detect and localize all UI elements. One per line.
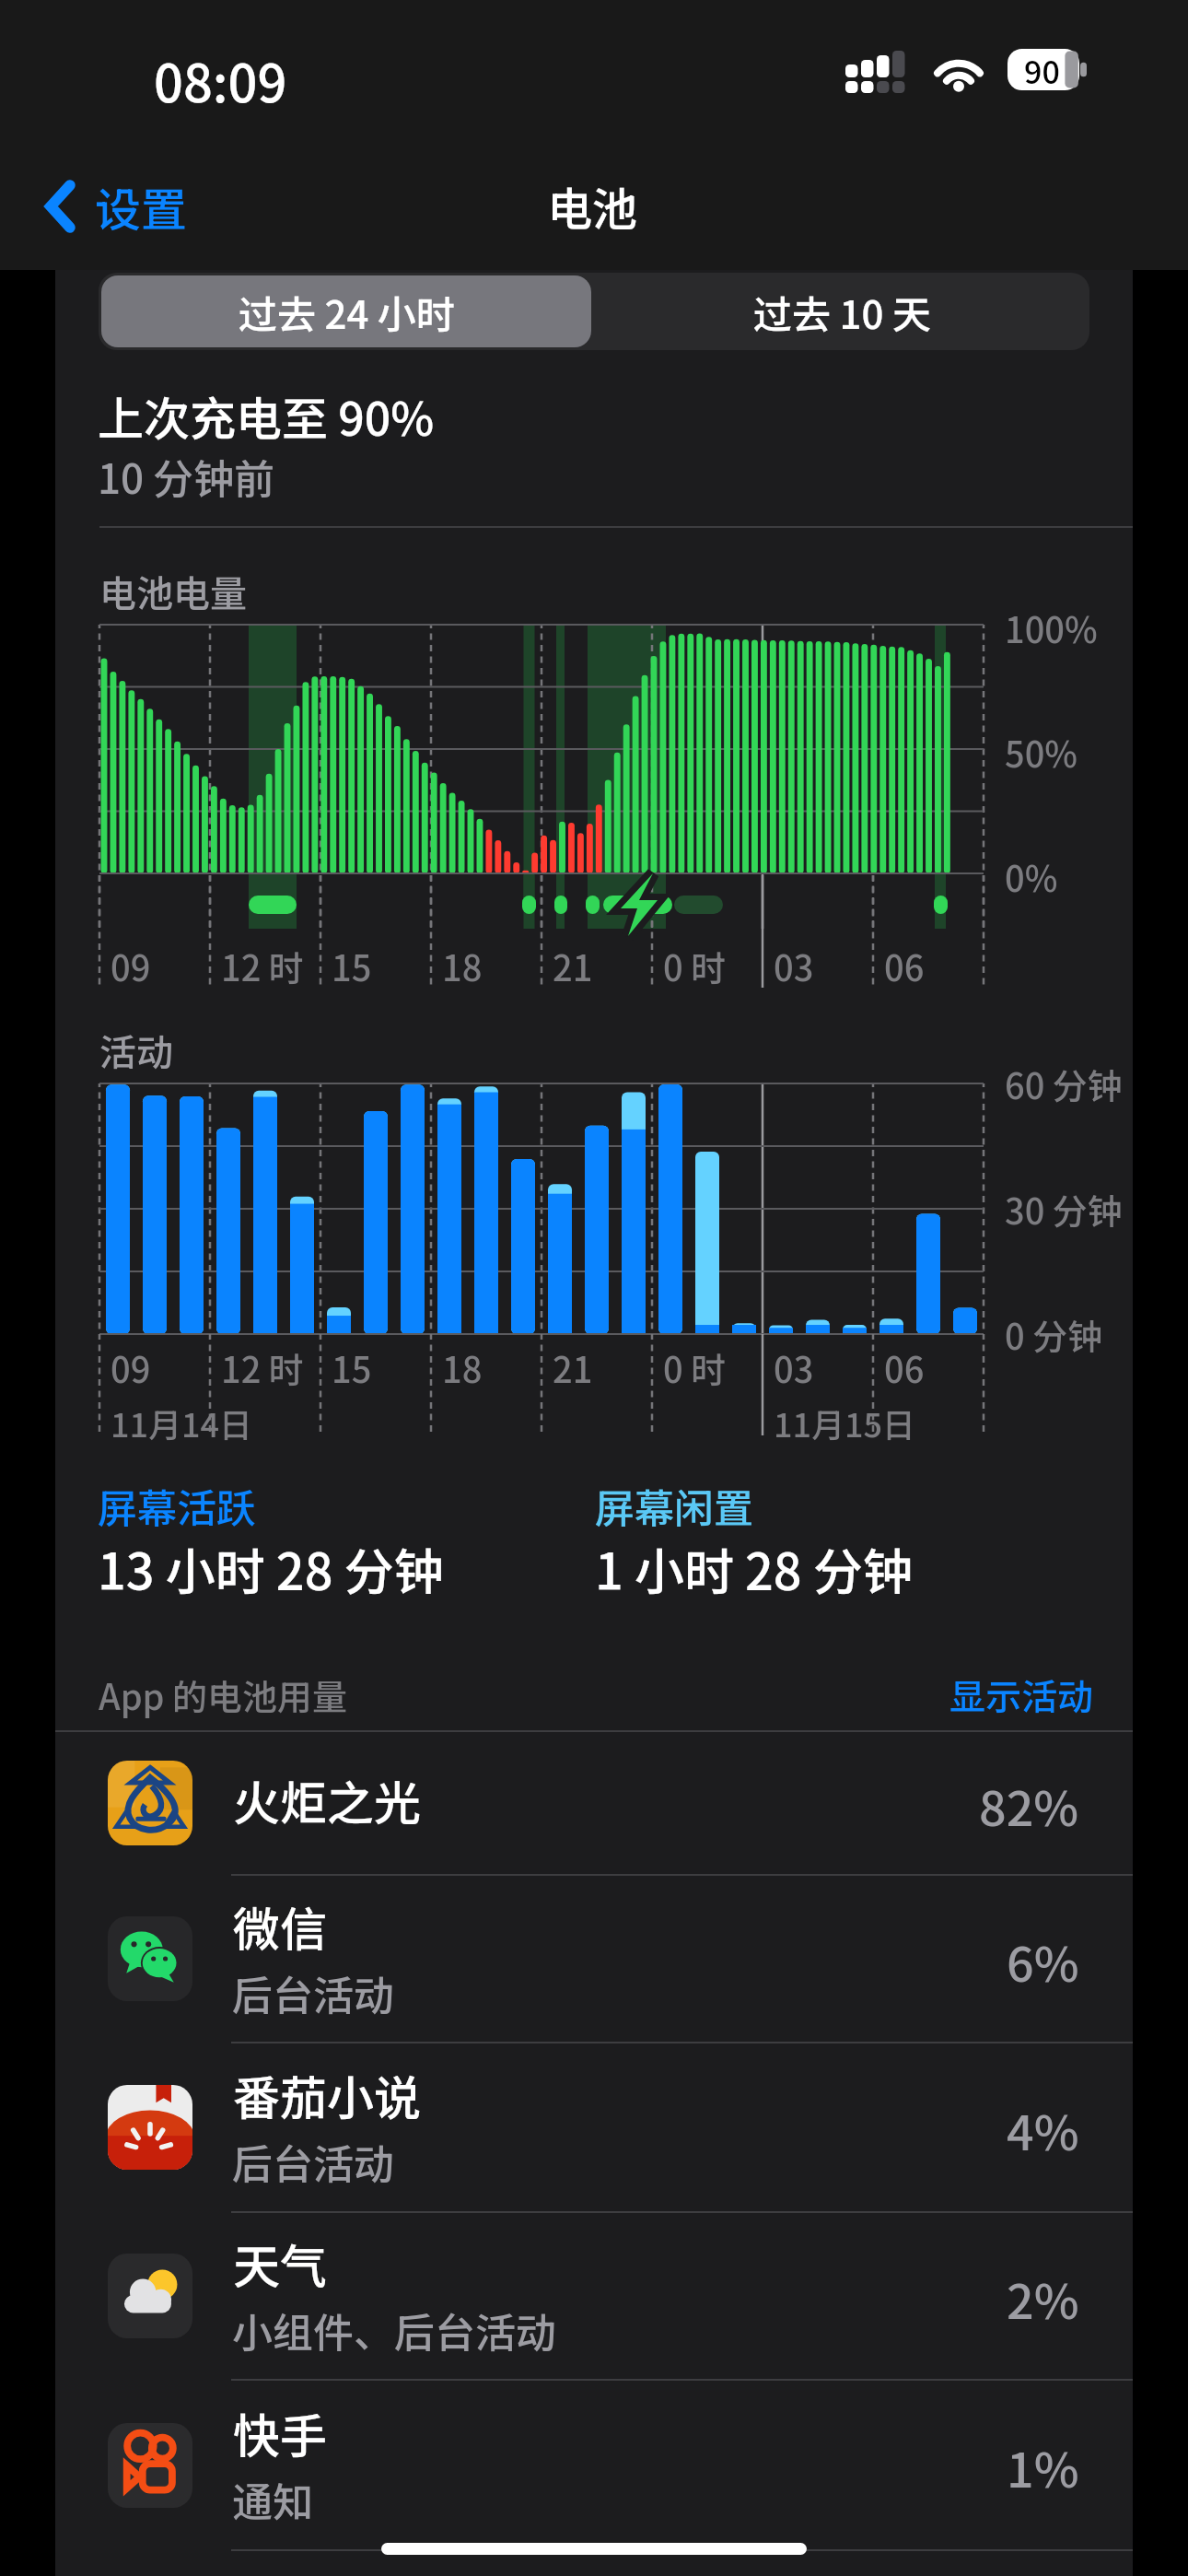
button[interactable] bbox=[55, 2212, 1133, 2380]
staticText: 过去 24 小时 bbox=[239, 284, 455, 340]
staticText: 天气 bbox=[233, 2230, 328, 2298]
staticText: App 的电池用量 bbox=[99, 1669, 348, 1720]
button[interactable] bbox=[55, 2380, 1133, 2550]
staticText: 小组件、后台活动 bbox=[232, 2301, 556, 2359]
button[interactable] bbox=[55, 1875, 1133, 2043]
staticText: 90 bbox=[1024, 48, 1060, 89]
button[interactable]: 设置 bbox=[32, 157, 200, 256]
staticText: 10 分钟前 bbox=[98, 447, 275, 506]
staticText: 13 小时 28 分钟 bbox=[98, 1532, 444, 1604]
staticText: 屏幕闲置 bbox=[595, 1477, 753, 1534]
staticText: 08:09 bbox=[154, 42, 287, 117]
staticText: 0 时 bbox=[663, 941, 727, 991]
staticText: 09 bbox=[111, 1342, 151, 1393]
staticText: 0% bbox=[1005, 851, 1058, 902]
staticText: 09 bbox=[111, 941, 151, 991]
staticText: 后台活动 bbox=[232, 1963, 394, 2022]
staticText: 屏幕活跃 bbox=[98, 1477, 256, 1534]
staticText: 0 分钟 bbox=[1005, 1309, 1103, 1360]
staticText: 快手 bbox=[233, 2399, 328, 2467]
staticText: 12 时 bbox=[221, 941, 304, 991]
staticText: 上次充电至 90% bbox=[98, 382, 435, 449]
staticText: 电池 bbox=[547, 173, 638, 239]
staticText: 82% bbox=[979, 1771, 1079, 1840]
staticText: 6% bbox=[1007, 1926, 1079, 1996]
staticText: 4% bbox=[1007, 2095, 1079, 2164]
staticText: 设置 bbox=[95, 173, 187, 240]
staticText: 30 分钟 bbox=[1005, 1184, 1123, 1235]
staticText: 1% bbox=[1007, 2432, 1079, 2501]
staticText: 显示活动 bbox=[949, 1669, 1094, 1720]
staticText: 60 分钟 bbox=[1005, 1059, 1123, 1109]
staticText: 03 bbox=[774, 941, 814, 991]
staticText: 通知 bbox=[232, 2470, 313, 2529]
staticText: 100% bbox=[1005, 603, 1098, 653]
staticText: 1 小时 28 分钟 bbox=[595, 1532, 913, 1604]
staticText: 03 bbox=[774, 1342, 814, 1393]
button[interactable]: 显示活动 bbox=[937, 1647, 1107, 1725]
staticText: 50% bbox=[1005, 727, 1078, 778]
staticText: 06 bbox=[884, 1342, 925, 1393]
staticText: 11月15日 bbox=[774, 1399, 916, 1446]
staticText: 电池电量 bbox=[99, 565, 247, 618]
staticText: 21 bbox=[553, 1342, 593, 1393]
staticText: 火炬之光 bbox=[233, 1766, 422, 1834]
staticText: 12 时 bbox=[221, 1342, 304, 1393]
staticText: 0 时 bbox=[663, 1342, 727, 1393]
staticText: 活动 bbox=[99, 1024, 173, 1077]
staticText: 21 bbox=[553, 941, 593, 991]
button[interactable] bbox=[55, 1731, 1133, 1875]
button[interactable]: 过去 10 天 bbox=[594, 273, 1089, 350]
staticText: 后台活动 bbox=[232, 2132, 394, 2191]
staticText: 过去 10 天 bbox=[753, 284, 931, 340]
staticText: 番茄小说 bbox=[233, 2061, 422, 2129]
staticText: 18 bbox=[442, 1342, 483, 1393]
staticText: 2% bbox=[1007, 2264, 1079, 2333]
staticText: 18 bbox=[442, 941, 483, 991]
staticText: 15 bbox=[332, 1342, 372, 1393]
staticText: 06 bbox=[884, 941, 925, 991]
staticText: 15 bbox=[332, 941, 372, 991]
button[interactable]: 过去 24 小时 bbox=[101, 275, 591, 347]
staticText: 11月14日 bbox=[111, 1399, 253, 1446]
staticText: 微信 bbox=[233, 1892, 328, 1961]
button[interactable] bbox=[55, 2043, 1133, 2212]
